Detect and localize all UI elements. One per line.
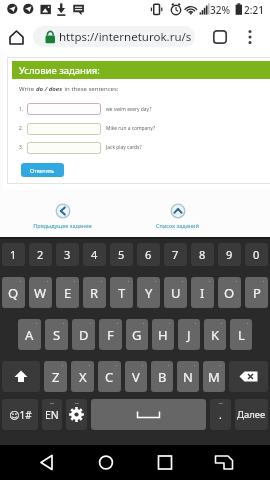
staticText: 1 — [10, 247, 17, 262]
staticText: · — [128, 278, 130, 284]
staticText: 9 — [226, 247, 233, 262]
staticText: C — [105, 368, 114, 386]
button[interactable]: More options — [241, 26, 259, 48]
staticText: N — [183, 368, 193, 386]
button[interactable]: Далее — [235, 399, 268, 430]
staticText: · — [155, 278, 157, 284]
staticText: M — [208, 368, 220, 386]
staticText: L — [238, 326, 245, 344]
button[interactable]: Settings — [66, 399, 87, 430]
button[interactable]: · — [110, 277, 133, 308]
button[interactable]: 9 — [218, 243, 241, 266]
staticText: R — [90, 284, 99, 302]
button[interactable]: 7 — [164, 243, 187, 266]
button[interactable]: ··· — [42, 399, 62, 430]
button[interactable]: 5 — [110, 243, 133, 266]
button[interactable]: Предыдущее задание — [27, 203, 98, 229]
staticText: · — [209, 278, 211, 284]
button[interactable]: Backspace — [229, 361, 268, 392]
staticText: I — [200, 284, 205, 302]
staticText: 1. — [19, 106, 24, 113]
button[interactable]: · — [178, 319, 200, 350]
button[interactable]: · — [99, 319, 122, 350]
button[interactable]: · — [137, 277, 160, 308]
button[interactable]: ··· — [210, 399, 231, 430]
staticText: ☺1# — [9, 408, 32, 422]
staticText: F — [107, 326, 114, 344]
staticText: H — [158, 326, 168, 344]
button[interactable]: 6 — [137, 243, 160, 266]
staticText: V — [132, 368, 140, 386]
staticText: 7 — [172, 247, 179, 262]
button[interactable]: Ответить — [21, 163, 64, 177]
staticText: · — [263, 278, 265, 284]
button[interactable]: Space — [91, 399, 206, 430]
staticText: · — [116, 362, 118, 368]
button[interactable]: · — [29, 277, 52, 308]
button[interactable]: Shift — [2, 361, 40, 392]
button[interactable]: · — [71, 361, 94, 392]
button[interactable]: · — [204, 319, 226, 350]
button[interactable]: · — [126, 319, 148, 350]
button[interactable]: Список заданий — [142, 203, 213, 229]
staticText: · — [194, 362, 196, 368]
button[interactable]: Screenshot — [212, 445, 236, 480]
button[interactable]: · — [230, 319, 252, 350]
staticText: . — [219, 408, 222, 422]
staticText: · — [47, 278, 49, 284]
staticText: D — [79, 326, 89, 344]
button[interactable]: Home — [6, 27, 27, 48]
staticText: X — [79, 368, 87, 386]
staticText: G — [132, 326, 142, 344]
button[interactable]: https://interneturok.ru/s — [33, 26, 195, 47]
button[interactable]: · — [56, 277, 79, 308]
button[interactable]: Recents — [153, 445, 177, 480]
button[interactable] — [27, 123, 101, 135]
button[interactable]: · — [45, 319, 68, 350]
staticText: · — [221, 320, 223, 326]
button[interactable]: 2 — [29, 243, 52, 266]
staticText: 5 — [118, 247, 125, 262]
button[interactable]: · — [2, 277, 25, 308]
button[interactable]: · — [72, 319, 95, 350]
button[interactable]: Home — [94, 445, 118, 480]
staticText: 0 — [253, 247, 260, 262]
button[interactable]: 3 — [56, 243, 79, 266]
button[interactable]: Back — [35, 445, 59, 480]
button[interactable]: · — [245, 277, 268, 308]
staticText: Список заданий — [156, 222, 199, 229]
button[interactable] — [27, 103, 101, 115]
button[interactable]: · — [203, 361, 225, 392]
staticText: ··· — [50, 400, 54, 406]
button[interactable]: · — [98, 361, 121, 392]
button[interactable] — [27, 142, 101, 154]
staticText: · — [63, 320, 65, 326]
staticText: ··· — [75, 400, 79, 406]
staticText: 2:21 — [244, 3, 264, 17]
button[interactable]: · — [83, 277, 106, 308]
button[interactable]: · — [152, 319, 174, 350]
button[interactable]: · — [44, 361, 67, 392]
button[interactable]: · — [151, 361, 173, 392]
button[interactable]: ☺1# — [2, 399, 38, 430]
staticText: · — [247, 320, 249, 326]
staticText: 2 — [37, 247, 44, 262]
button[interactable]: Tabs — [213, 30, 227, 44]
button[interactable]: · — [177, 361, 199, 392]
staticText: https://interneturok.ru/s — [59, 29, 192, 45]
button[interactable]: 8 — [191, 243, 214, 266]
button[interactable]: · — [191, 277, 214, 308]
staticText: · — [220, 362, 222, 368]
button[interactable]: 4 — [83, 243, 106, 266]
button[interactable]: · — [18, 319, 41, 350]
staticText: Q — [8, 284, 19, 302]
button[interactable]: 0 — [245, 243, 268, 266]
button[interactable]: · — [164, 277, 187, 308]
staticText: Предыдущее задание — [33, 222, 92, 229]
staticText: T — [118, 284, 126, 302]
button[interactable]: · — [218, 277, 241, 308]
button[interactable]: · — [125, 361, 147, 392]
button[interactable]: 1 — [2, 243, 25, 266]
staticText: Z — [52, 368, 60, 386]
